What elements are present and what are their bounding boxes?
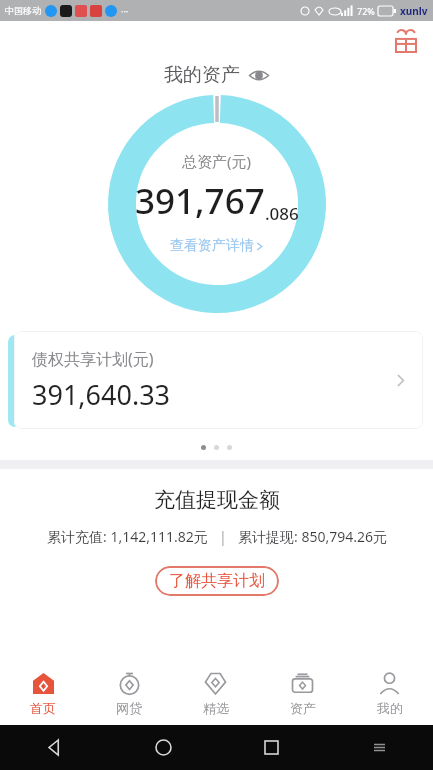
staticText: .086 bbox=[265, 202, 299, 225]
staticText: 查看资产详情 bbox=[170, 237, 254, 255]
staticText: ··· bbox=[121, 5, 129, 17]
staticText: 累计充值: 1,142,111.82元 bbox=[47, 527, 208, 546]
staticText: 充值提现金额 bbox=[154, 487, 280, 513]
staticText: 391,767 bbox=[135, 177, 265, 225]
button[interactable]: Toggle visibility bbox=[248, 64, 270, 86]
button[interactable]: 网贷 bbox=[86, 667, 172, 721]
staticText: 总资产(元) bbox=[182, 151, 252, 171]
button[interactable]: Home bbox=[109, 739, 217, 756]
staticText: | bbox=[208, 527, 238, 546]
button[interactable]: 资产 bbox=[259, 667, 346, 721]
button[interactable]: Back bbox=[0, 739, 109, 756]
button[interactable]: Gift rewards bbox=[391, 27, 421, 57]
staticText: 72% bbox=[357, 5, 375, 17]
staticText: 网贷 bbox=[116, 700, 142, 716]
staticText: 了解共享计划 bbox=[169, 571, 265, 591]
staticText: 首页 bbox=[30, 700, 56, 716]
staticText: 精选 bbox=[203, 700, 229, 716]
staticText: 我的资产 bbox=[164, 63, 240, 87]
staticText: 中国移动 bbox=[5, 5, 41, 16]
staticText: 我的 bbox=[377, 700, 403, 716]
staticText: 391,640.33 bbox=[32, 376, 171, 413]
button[interactable]: 了解共享计划 bbox=[155, 566, 279, 596]
staticText: 累计提现: 850,794.26元 bbox=[238, 527, 387, 546]
button[interactable]: 债权共享计划(元) bbox=[14, 331, 423, 429]
button[interactable]: Recents bbox=[217, 740, 325, 755]
button[interactable]: 我的 bbox=[346, 667, 433, 721]
staticText: 债权共享计划(元) bbox=[32, 348, 154, 370]
staticText: 资产 bbox=[290, 700, 316, 716]
button[interactable]: Menu bbox=[325, 740, 433, 755]
button[interactable]: 查看资产详情 bbox=[164, 235, 270, 257]
button[interactable]: 精选 bbox=[172, 667, 259, 721]
staticText: xunlv bbox=[400, 4, 428, 18]
button[interactable]: 首页 bbox=[0, 667, 86, 721]
